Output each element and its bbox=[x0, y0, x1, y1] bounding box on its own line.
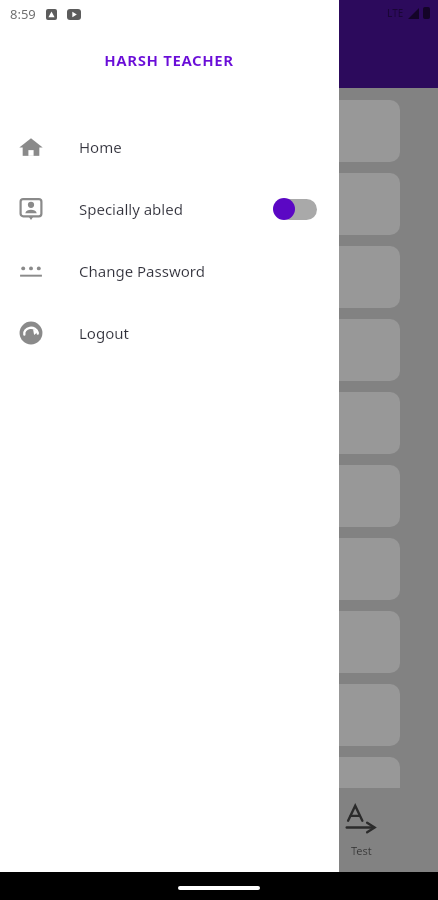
button[interactable] bbox=[8, 100, 400, 162]
button[interactable]: Specially abled toggle bbox=[273, 196, 317, 222]
button[interactable]: Change Password bbox=[0, 254, 339, 288]
button[interactable] bbox=[8, 684, 400, 746]
button[interactable] bbox=[8, 538, 400, 600]
button[interactable] bbox=[8, 465, 400, 527]
button[interactable]: Test bbox=[344, 803, 378, 858]
button[interactable] bbox=[8, 246, 400, 308]
button[interactable] bbox=[8, 757, 400, 819]
staticText: Logout bbox=[79, 323, 129, 343]
staticText: Specially abled bbox=[79, 199, 183, 219]
staticText: HARSH TEACHER bbox=[104, 50, 234, 70]
staticText: Test bbox=[351, 843, 372, 858]
button[interactable] bbox=[8, 173, 400, 235]
staticText: Change Password bbox=[79, 261, 205, 281]
button[interactable]: Specially abled bbox=[0, 192, 339, 226]
staticText: Home bbox=[79, 137, 122, 157]
staticText: 8:59 bbox=[10, 5, 36, 23]
button[interactable] bbox=[8, 611, 400, 673]
staticText: LTE bbox=[387, 6, 404, 20]
button[interactable] bbox=[8, 392, 400, 454]
button[interactable]: Home bbox=[0, 130, 339, 164]
button[interactable]: Logout bbox=[0, 316, 339, 350]
button[interactable] bbox=[8, 319, 400, 381]
